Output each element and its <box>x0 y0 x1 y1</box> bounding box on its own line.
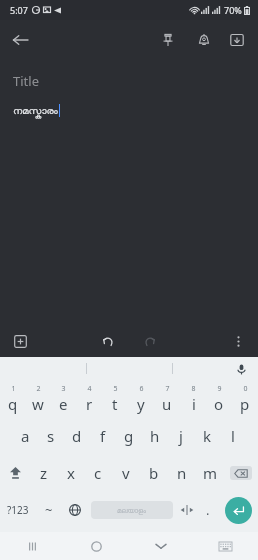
button[interactable]: Backspace <box>224 454 258 491</box>
staticText: j <box>179 426 183 446</box>
button[interactable]: More options <box>224 327 252 355</box>
staticText: 70% <box>224 4 242 16</box>
button[interactable]: Recent apps <box>0 532 64 560</box>
button[interactable]: Keyboard settings <box>193 532 258 560</box>
button[interactable]: c <box>84 454 112 491</box>
button[interactable]: Symbols <box>36 491 62 529</box>
button[interactable]: Move cursor <box>176 491 198 529</box>
button[interactable]: d <box>64 417 90 454</box>
button[interactable]: h <box>142 417 168 454</box>
button[interactable]: s <box>38 417 64 454</box>
staticText: w <box>32 394 44 414</box>
button[interactable]: Back <box>0 20 40 60</box>
button[interactable]: ?123 <box>0 491 36 529</box>
button[interactable]: Home <box>64 532 128 560</box>
other: Voice input <box>232 360 250 378</box>
button[interactable]: Change language <box>62 491 88 529</box>
button[interactable]: 6 <box>128 380 154 417</box>
staticText: 4 <box>87 384 92 394</box>
staticText: b <box>149 463 159 483</box>
staticText: 8 <box>191 384 196 394</box>
staticText: x <box>67 463 75 483</box>
staticText: e <box>59 394 68 414</box>
button[interactable]: 3 <box>50 380 76 417</box>
staticText: n <box>177 463 187 483</box>
button[interactable]: Reminder <box>186 22 222 58</box>
button[interactable]: v <box>112 454 140 491</box>
staticText: മലയാളം <box>117 507 147 514</box>
button[interactable]: k <box>194 417 220 454</box>
staticText: m <box>203 463 218 483</box>
button[interactable]: 0 <box>232 380 258 417</box>
staticText: r <box>86 394 93 414</box>
button[interactable]: 8 <box>180 380 206 417</box>
staticText: q <box>8 394 18 414</box>
button[interactable]: j <box>168 417 194 454</box>
button[interactable]: x <box>57 454 84 491</box>
button[interactable]: Voice input <box>173 357 258 380</box>
staticText: . <box>206 501 210 519</box>
staticText: 5:07 <box>10 4 28 16</box>
staticText: k <box>203 426 212 446</box>
button[interactable]: Redo <box>136 327 164 355</box>
button[interactable]: l <box>220 417 246 454</box>
button[interactable]: Add <box>6 327 34 355</box>
staticText: ~ <box>45 501 53 519</box>
staticText: 6 <box>139 384 144 394</box>
button[interactable]: 1 <box>0 380 25 417</box>
staticText: c <box>94 463 102 483</box>
button[interactable]: Hide keyboard <box>128 532 193 560</box>
staticText: i <box>192 394 196 414</box>
staticText: ?123 <box>7 503 29 517</box>
staticText: നമസ്കാരം <box>13 106 58 116</box>
staticText: g <box>124 426 134 446</box>
staticText: d <box>72 426 82 446</box>
button[interactable]: Space <box>91 501 173 519</box>
button[interactable]: a <box>12 417 38 454</box>
staticText: l <box>231 426 235 446</box>
staticText: a <box>21 426 30 446</box>
button[interactable]: m <box>196 454 224 491</box>
staticText: z <box>40 463 48 483</box>
button[interactable]: g <box>116 417 142 454</box>
staticText: y <box>137 394 145 414</box>
button[interactable]: Archive <box>222 22 252 58</box>
staticText: 1 <box>11 384 16 394</box>
staticText: v <box>122 463 130 483</box>
button[interactable]: 2 <box>25 380 50 417</box>
button[interactable]: b <box>140 454 168 491</box>
staticText: 5 <box>113 384 118 394</box>
staticText: o <box>214 394 224 414</box>
button[interactable]: Pin <box>150 22 186 58</box>
staticText: f <box>100 426 106 446</box>
button[interactable]: 7 <box>154 380 180 417</box>
staticText: u <box>162 394 172 414</box>
staticText: 9 <box>217 384 222 394</box>
staticText: 0 <box>243 384 248 394</box>
staticText: s <box>47 426 55 446</box>
button[interactable]: 5 <box>102 380 128 417</box>
staticText: h <box>150 426 160 446</box>
staticText: Title <box>13 72 39 90</box>
staticText: 7 <box>165 384 170 394</box>
button[interactable]: Shift <box>0 454 30 491</box>
button[interactable]: 4 <box>76 380 102 417</box>
button[interactable]: Undo <box>94 327 122 355</box>
button[interactable]: z <box>30 454 57 491</box>
staticText: 3 <box>61 384 66 394</box>
button[interactable]: Enter <box>218 491 258 529</box>
staticText: p <box>240 394 250 414</box>
staticText: t <box>112 394 118 414</box>
button[interactable]: . <box>198 491 218 529</box>
button[interactable]: n <box>168 454 196 491</box>
button[interactable]: 9 <box>206 380 232 417</box>
staticText: 2 <box>36 384 41 394</box>
button[interactable]: f <box>90 417 116 454</box>
